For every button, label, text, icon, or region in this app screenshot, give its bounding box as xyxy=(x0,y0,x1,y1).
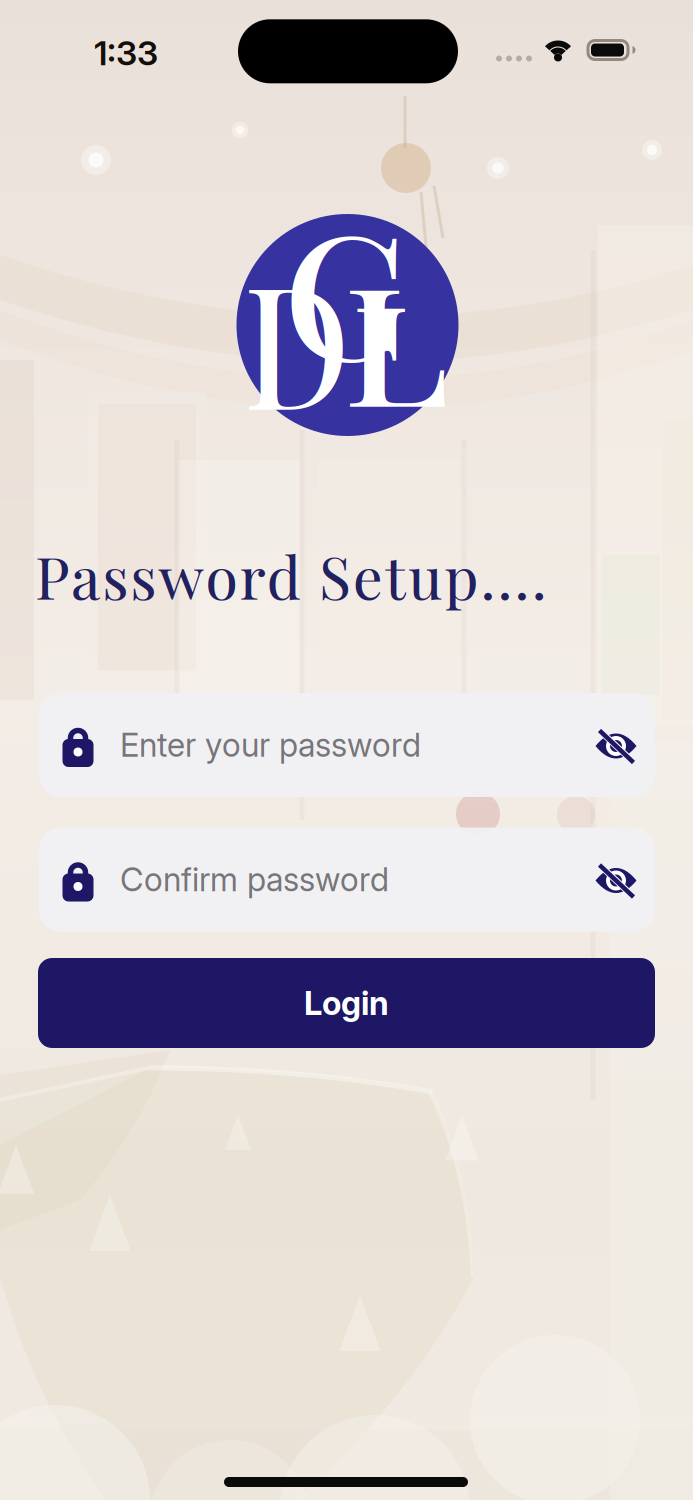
staticText: L xyxy=(347,229,445,448)
button[interactable]: Show password xyxy=(593,726,639,766)
staticText: D xyxy=(234,227,359,452)
button[interactable]: Login xyxy=(38,958,655,1048)
staticText: Password Setup.... xyxy=(35,536,547,614)
button[interactable]: Confirm password xyxy=(39,827,655,931)
staticText: Enter your password xyxy=(120,725,421,765)
staticText: Login xyxy=(304,983,389,1023)
button[interactable]: Enter your password xyxy=(39,693,655,797)
button[interactable]: Show password xyxy=(593,860,639,900)
staticText: Confirm password xyxy=(120,860,389,899)
staticText: G xyxy=(285,176,407,404)
staticText: 1:33 xyxy=(94,32,158,73)
